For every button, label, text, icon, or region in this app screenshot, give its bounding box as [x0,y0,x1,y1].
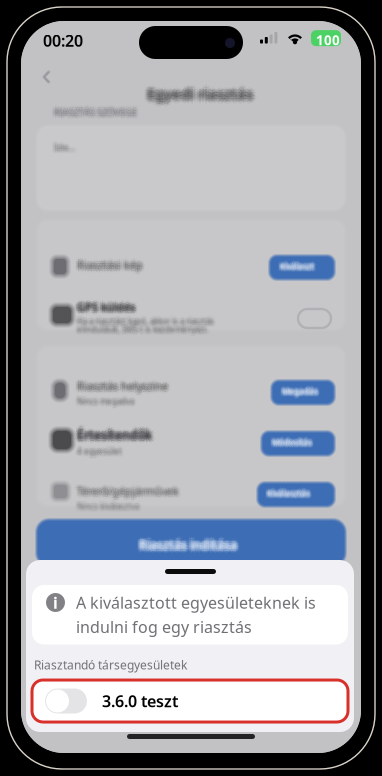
staticText: Módosítás [273,438,313,449]
staticText: Kiválaszt [281,261,315,272]
staticText: 4 egyesület [79,444,124,455]
staticText: Ha a riasztást kapó, akkor is a riasztás [78,315,215,325]
staticText: Megadás [281,385,317,396]
staticText: Riasztási kép [77,261,143,276]
staticText: Riasztás helyszíne [77,379,168,393]
staticText: Értesítendők [77,430,152,446]
staticText: Ide… [53,140,74,152]
staticText: Egyedi riasztás [149,82,255,102]
staticText: Kiválasztás [268,489,311,500]
staticText: Térerő/gépjárművek [77,484,179,498]
staticText: Ha a riasztást kapó, akkor is a riasztás [79,314,216,325]
staticText: Térerő/gépjárművek [74,484,176,498]
staticText: Egyedi riasztás [147,88,253,107]
staticText: Értesítendők [75,427,150,443]
staticText: elindulását, SMS-t is kezdeményezi. [77,324,208,335]
staticText: elindulását, SMS-t is kezdeményezi. [75,324,206,335]
staticText: Nincs megadva [75,396,132,407]
staticText: Megadás [283,387,319,398]
staticText: Nincs kiválasztva [76,502,138,513]
staticText: 4 egyesület [75,444,120,455]
staticText: Riasztás indítása [139,535,237,551]
staticText: Módosítás [272,438,312,449]
staticText: GPS küldés [75,300,133,314]
staticText: elindulását, SMS-t is kezdeményezi. [74,324,205,335]
staticText: Megadás [280,384,316,395]
staticText: Értesítendők [75,429,150,445]
staticText: GPS küldés [75,302,133,316]
staticText: Nincs megadva [75,394,132,405]
staticText: GPS küldés [76,299,134,313]
staticText: RIASZTÁS SZÖVEGE [54,104,137,117]
staticText: Nincs megadva [74,396,131,407]
staticText: Kiválaszt [279,260,313,271]
staticText: Módosítás [272,437,312,448]
staticText: Egyedi riasztás [150,81,256,101]
staticText: Riasztás indítása [137,535,235,551]
staticText: Módosítás [273,436,313,447]
staticText: Riasztási kép [78,257,144,271]
staticText: Ha a riasztást kapó, akkor is a riasztás [75,318,212,329]
staticText: Kiválasztás [266,488,309,499]
staticText: Riasztás helyszíne [79,381,170,395]
staticText: GPS küldés [78,301,136,315]
staticText: Megadás [282,383,318,394]
button[interactable]: 3.6.0 teszt [32,680,348,722]
staticText: Ide… [52,141,73,153]
staticText: Ha a riasztást kapó, akkor is a riasztás [76,315,213,325]
staticText: Kiválasztás [266,489,309,500]
staticText: Kiválaszt [280,262,314,273]
staticText: elindulását, SMS-t is kezdeményezi. [78,324,209,335]
staticText: Nincs megadva [75,398,132,409]
staticText: Módosítás [272,434,312,445]
staticText: Riasztás helyszíne [75,379,166,393]
staticText: Megadás [282,387,318,398]
staticText: 4 egyesület [76,445,121,455]
staticText: Riasztás helyszíne [77,381,168,395]
staticText: Egyedi riasztás [147,82,253,101]
staticText: RIASZTÁS SZÖVEGE [55,105,138,117]
staticText: Nincs megadva [78,397,135,408]
staticText: elindulását, SMS-t is kezdeményezi. [79,322,210,333]
staticText: RIASZTÁS SZÖVEGE [57,106,140,118]
staticText: Riasztási kép [75,258,141,272]
staticText: elindulását, SMS-t is kezdeményezi. [78,323,209,333]
staticText: Riasztási kép [79,260,145,275]
staticText: Kiválaszt [280,261,314,272]
staticText: Térerő/gépjárművek [77,482,179,496]
staticText: 00:20 [43,30,83,51]
staticText: Megadás [283,386,319,397]
staticText: elindulását, SMS-t is kezdeményezi. [79,326,210,337]
staticText: Kiválaszt [283,261,317,272]
staticText: RIASZTÁS SZÖVEGE [52,108,135,121]
staticText: Nincs kiválasztva [77,504,139,514]
staticText: Riasztás indítása [141,537,239,553]
staticText: Egyedi riasztás [144,87,250,106]
staticText: Térerő/gépjárművek [80,484,182,498]
staticText: Módosítás [273,437,313,448]
staticText: GPS küldés [77,298,135,312]
staticText: Riasztási kép [77,255,143,269]
staticText: Értesítendők [77,425,152,441]
staticText: Nincs megadva [78,395,135,405]
staticText: Nincs kiválasztva [76,500,138,510]
staticText: Térerő/gépjárművek [78,483,180,497]
staticText: RIASZTÁS SZÖVEGE [52,106,135,118]
staticText: Egyedi riasztás [151,84,257,103]
staticText: Kiválaszt [280,264,314,274]
staticText: Ide… [56,139,77,151]
staticText: Egyedi riasztás [149,84,255,103]
staticText: Értesítendők [76,428,151,444]
staticText: Egyedi riasztás [145,82,251,102]
staticText: Riasztási kép [77,256,143,270]
staticText: elindulását, SMS-t is kezdeményezi. [77,327,208,337]
staticText: elindulását, SMS-t is kezdeményezi. [77,325,208,336]
staticText: Nincs megadva [78,396,135,407]
staticText: Ide… [54,138,75,150]
staticText: Riasztás indítása [141,539,239,555]
staticText: Riasztás indítása [136,537,234,553]
staticText: GPS küldés [77,303,135,317]
staticText: Riasztási kép [79,258,145,272]
staticText: Ide… [55,140,76,152]
staticText: Módosítás [272,436,312,446]
